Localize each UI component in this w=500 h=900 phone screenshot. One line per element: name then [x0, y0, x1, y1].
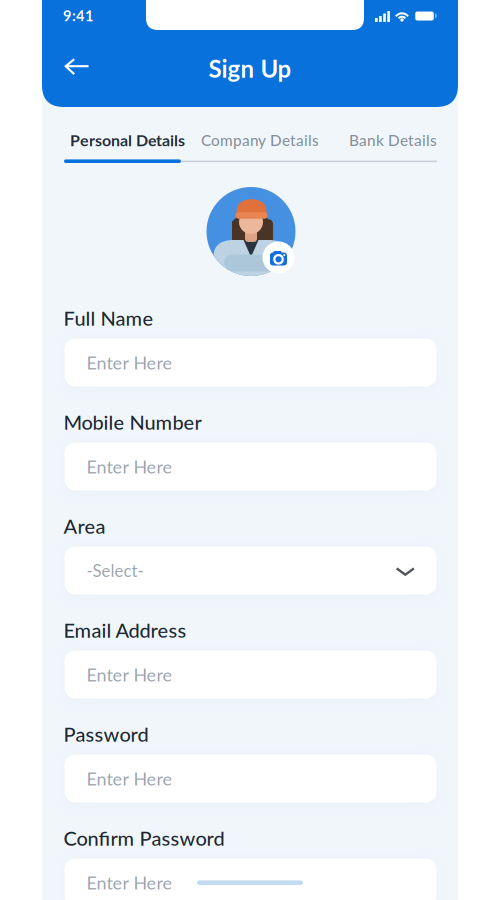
button[interactable]: Back	[64, 58, 89, 76]
button[interactable]: Bank Details	[343, 125, 443, 155]
staticText: Confirm Password	[63, 826, 224, 850]
staticText: Email Address	[63, 618, 186, 642]
button[interactable]: Company Details	[200, 125, 320, 155]
button[interactable]: Enter Here	[64, 338, 436, 386]
button[interactable]: Personal Details	[67, 125, 187, 155]
staticText: Full Name	[63, 306, 153, 330]
button[interactable]: Change profile photo	[262, 241, 294, 273]
staticText: Enter Here	[86, 352, 172, 373]
button[interactable]: Enter Here	[64, 650, 436, 698]
button[interactable]: Enter Here	[64, 442, 436, 490]
staticText: Enter Here	[86, 768, 172, 789]
staticText: 9:41	[63, 7, 94, 24]
staticText: Area	[63, 514, 105, 538]
staticText: Password	[63, 722, 148, 746]
staticText: Bank Details	[349, 131, 437, 149]
staticText: Enter Here	[86, 872, 172, 893]
staticText: -Select-	[86, 560, 143, 580]
staticText: Sign Up	[208, 54, 291, 83]
staticText: Enter Here	[86, 664, 172, 685]
staticText: Personal Details	[70, 130, 185, 150]
button[interactable]: -Select-	[64, 546, 436, 594]
staticText: Enter Here	[86, 456, 172, 477]
staticText: Company Details	[201, 131, 319, 149]
button[interactable]: Enter Here	[64, 858, 436, 900]
staticText: Mobile Number	[63, 410, 201, 434]
button[interactable]: Enter Here	[64, 754, 436, 802]
